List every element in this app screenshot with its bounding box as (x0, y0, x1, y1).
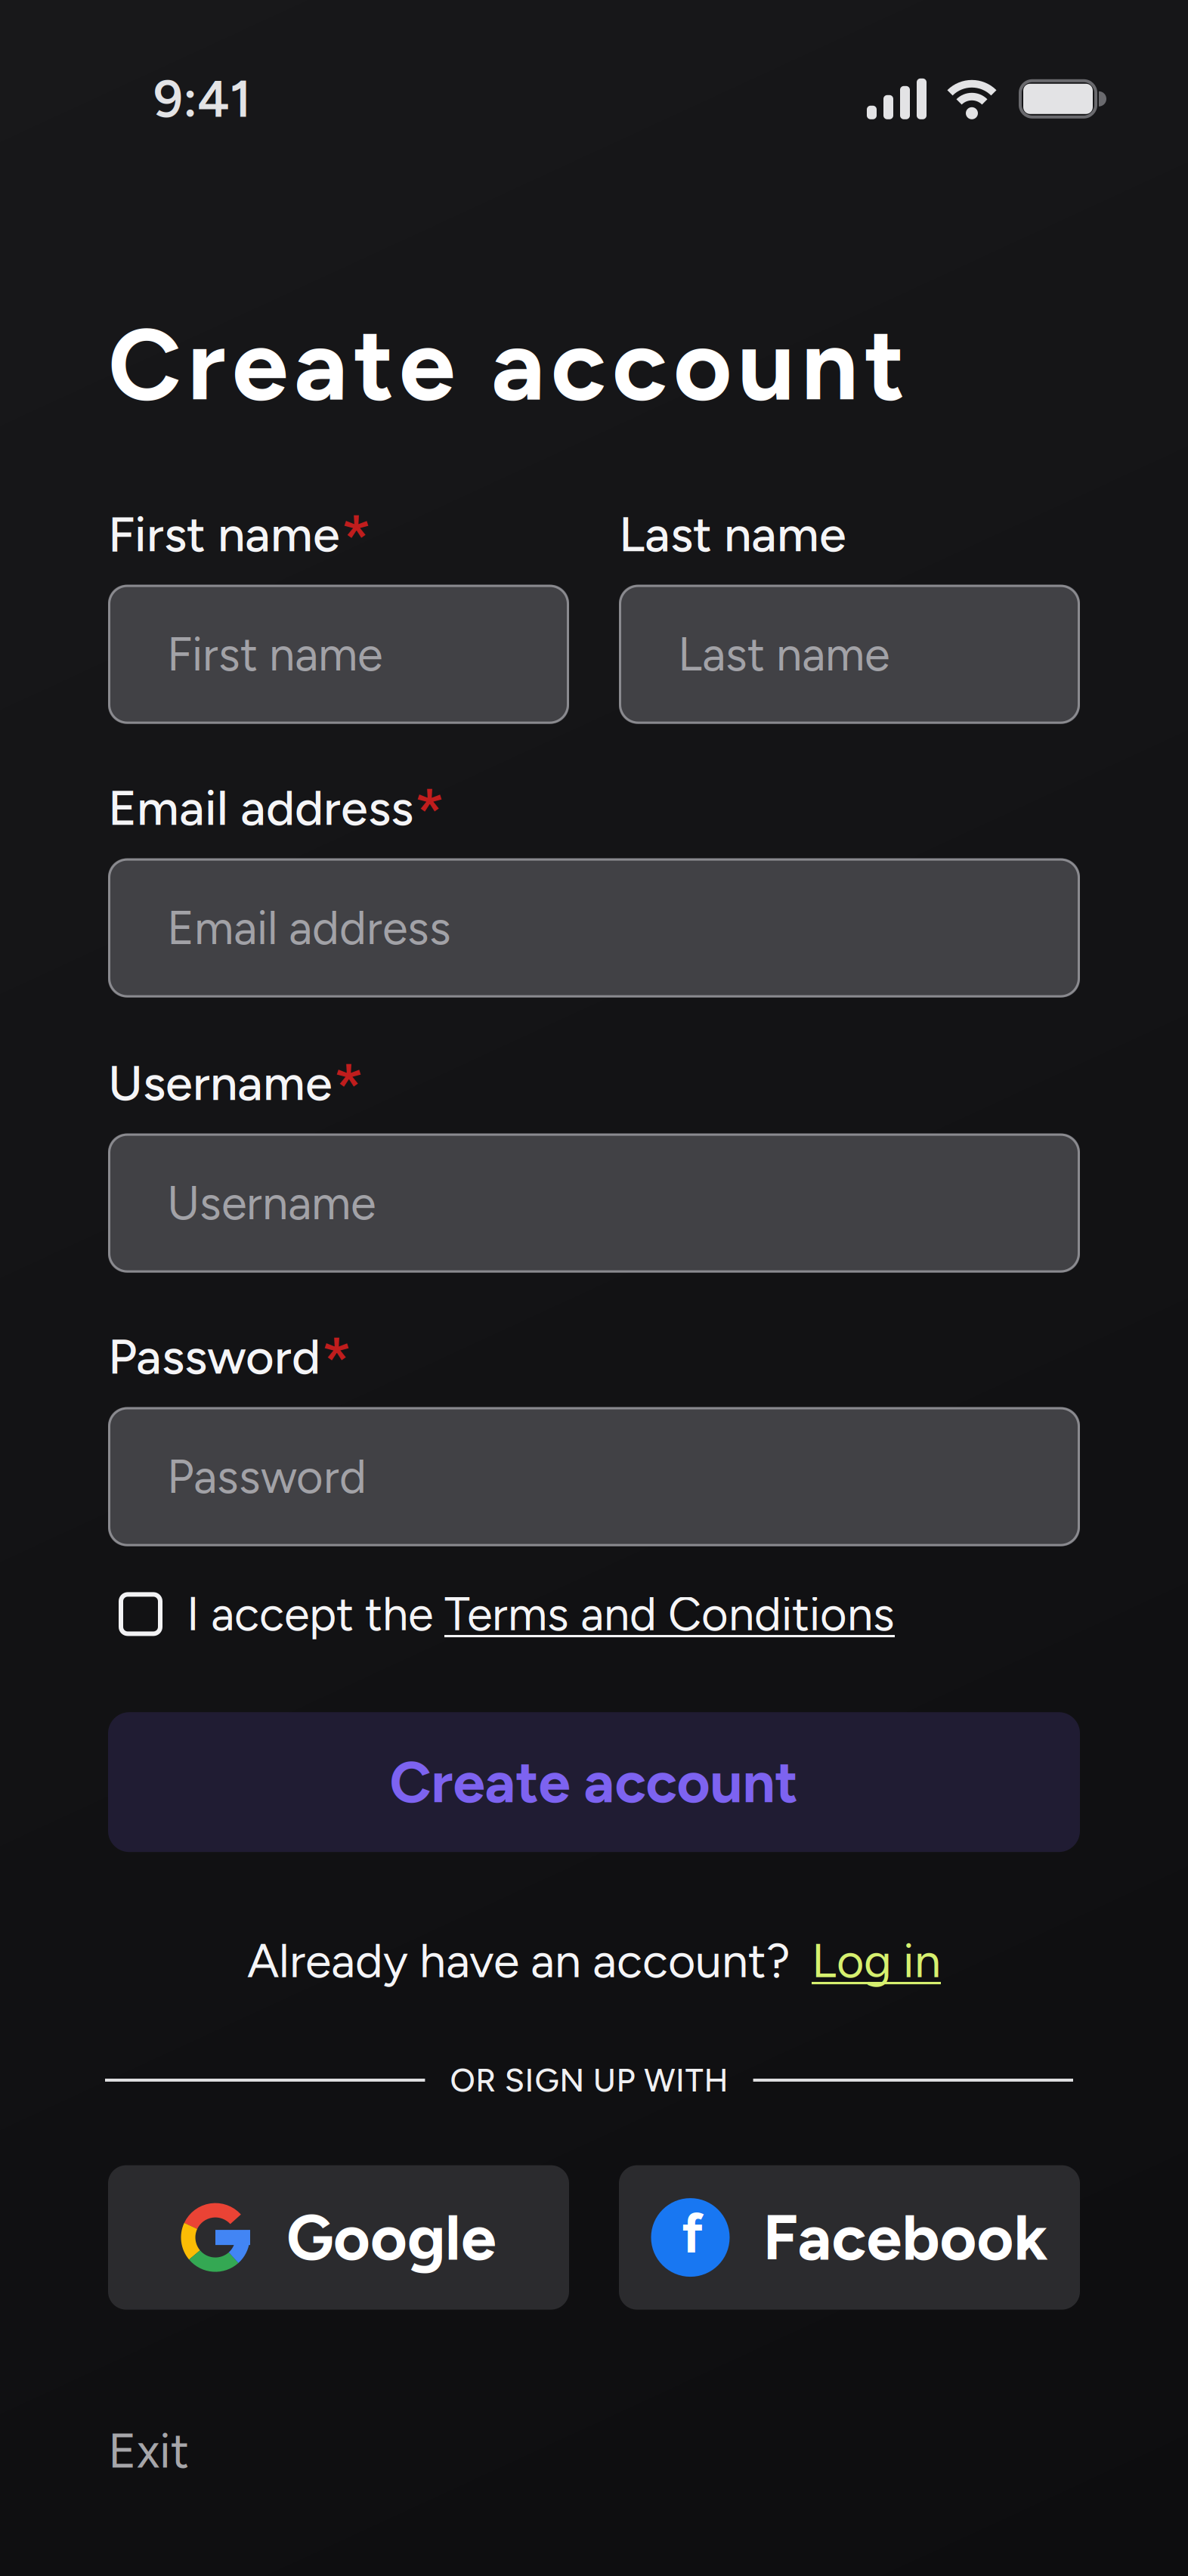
button[interactable]: Log in (812, 1932, 941, 1989)
staticText: Log in (812, 1932, 941, 1989)
button[interactable]: Email address (108, 858, 1080, 997)
staticText: Already have an account? (247, 1932, 790, 1989)
staticText: Terms and Conditions (444, 1586, 895, 1642)
staticText: Facebook (763, 2199, 1048, 2276)
staticText: 9:41 (153, 68, 251, 130)
staticText: Password (167, 1449, 367, 1504)
button[interactable]: f (619, 2165, 1080, 2310)
button[interactable]: Create account (108, 1712, 1080, 1852)
staticText: First name (108, 505, 340, 564)
button[interactable]: I accept the Terms and Conditions (119, 1586, 444, 1642)
staticText: Google (286, 2199, 497, 2276)
staticText: Password (108, 1327, 320, 1386)
button[interactable]: First name (108, 585, 569, 724)
button[interactable]: Username (108, 1134, 1080, 1273)
staticText: Create account (108, 304, 905, 424)
staticText: First name (167, 626, 382, 682)
staticText: Last name (619, 505, 846, 564)
button[interactable]: Password (108, 1407, 1080, 1546)
button[interactable]: Exit (108, 2422, 189, 2480)
staticText: OR SIGN UP WITH (450, 2061, 728, 2100)
staticText: * (413, 773, 446, 853)
staticText: Email address (167, 900, 451, 956)
staticText: Last name (678, 626, 889, 682)
staticText: Email address (108, 778, 413, 837)
staticText: Username (167, 1175, 376, 1231)
staticText: Exit (108, 2422, 189, 2480)
staticText: Username (108, 1053, 333, 1112)
button[interactable]: Last name (619, 585, 1080, 724)
button[interactable]: Terms and Conditions (444, 1586, 895, 1642)
button[interactable]: Google (108, 2165, 569, 2310)
staticText: * (333, 1048, 365, 1128)
staticText: f (682, 2199, 704, 2266)
staticText: * (320, 1322, 353, 1402)
staticText: I accept the (187, 1586, 444, 1642)
staticText: Create account (390, 1748, 798, 1817)
staticText: * (340, 499, 373, 579)
